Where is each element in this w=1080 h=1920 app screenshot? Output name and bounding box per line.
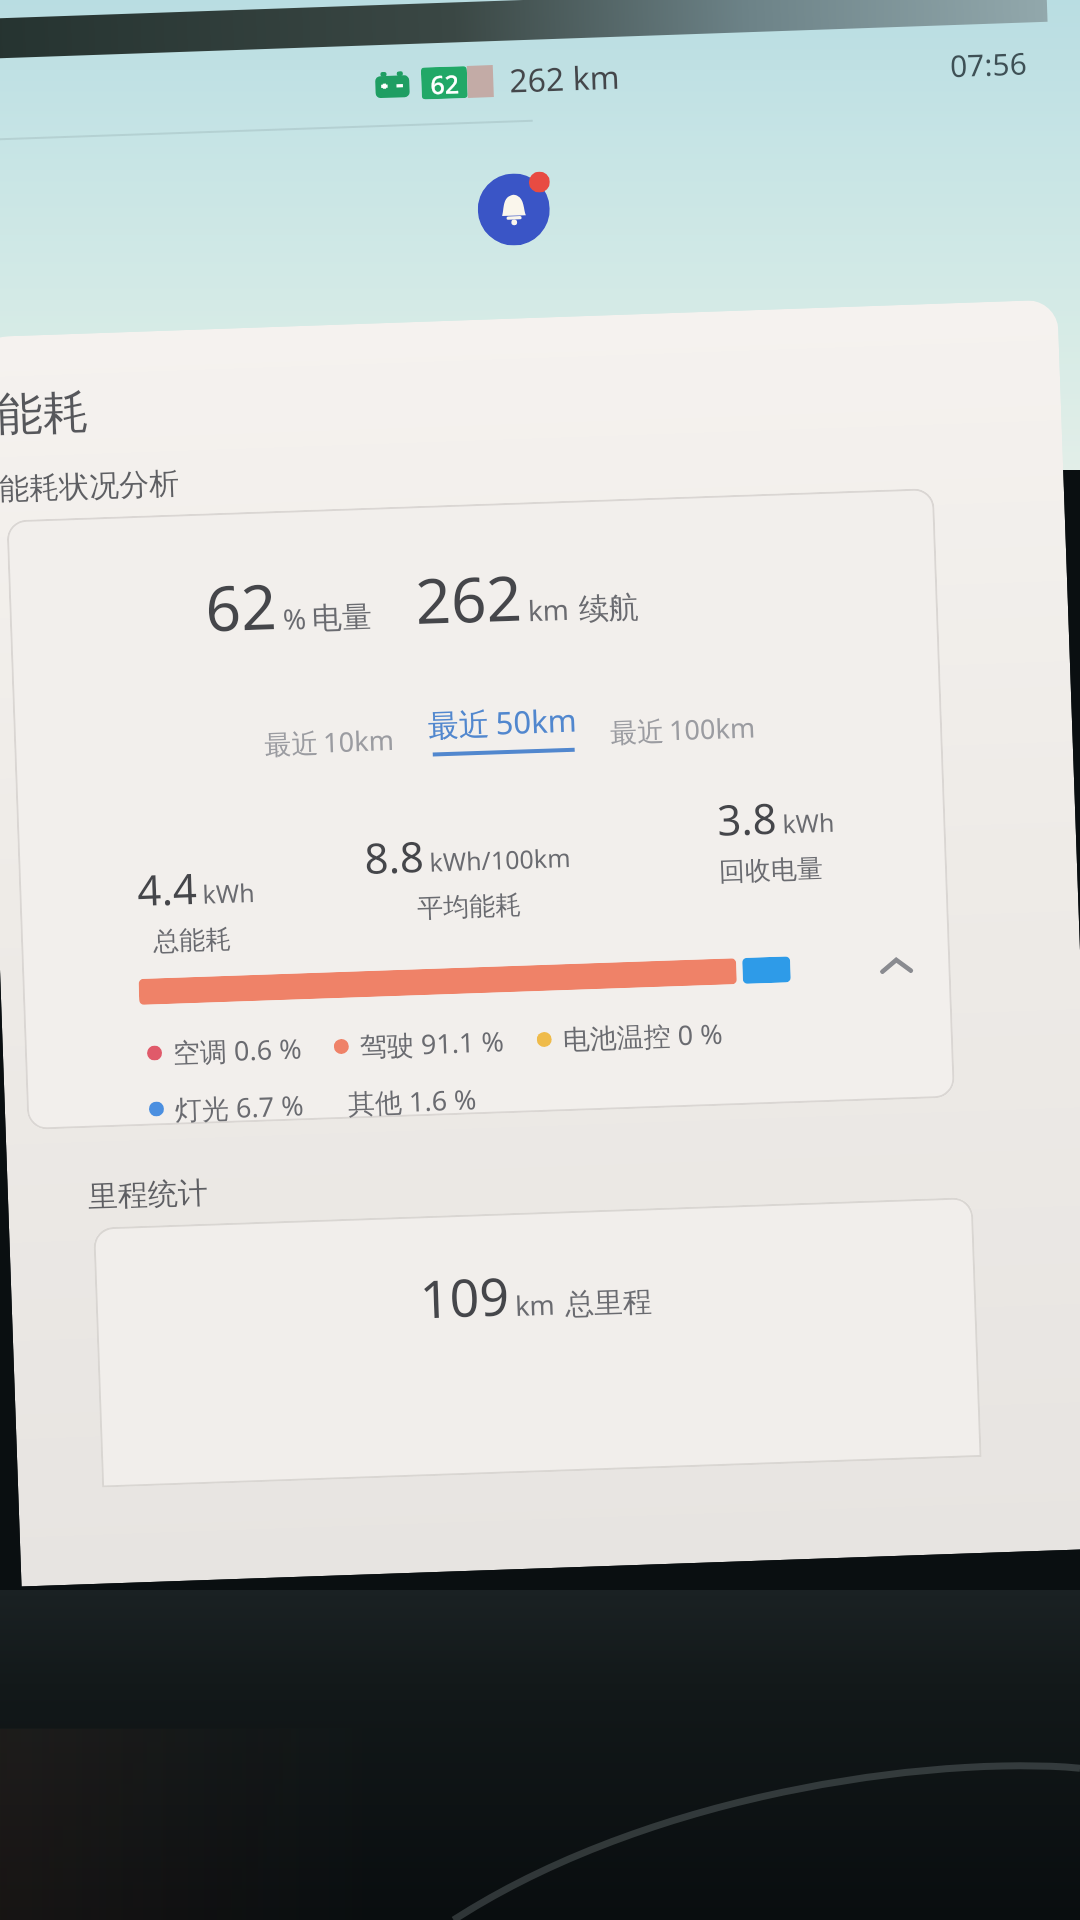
staticText: 最近 [609, 714, 665, 750]
staticText: 62 [204, 563, 278, 649]
staticText: % [282, 599, 308, 638]
staticText: 109 [418, 1259, 511, 1333]
staticText: 100km [668, 708, 756, 748]
staticText: 空调 0.6 % [172, 1029, 303, 1071]
staticText: kWh [202, 875, 256, 911]
button[interactable]: 最近 [259, 717, 399, 767]
button[interactable]: 62 [6, 488, 955, 1130]
staticText: 62 [430, 66, 460, 99]
staticText: 能耗 [0, 383, 90, 445]
button[interactable]: 最近 [605, 704, 760, 754]
staticText: 电量 [311, 598, 373, 638]
staticText: 总里程 [564, 1283, 653, 1323]
staticText: 续航 [578, 588, 639, 628]
staticText: 灯光 6.7 % [174, 1086, 304, 1125]
staticText: 262 km [508, 55, 621, 102]
button[interactable]: 最近 [423, 694, 583, 761]
button[interactable]: Collapse [872, 941, 921, 990]
staticText: 10km [323, 721, 395, 760]
staticText: 262 [414, 554, 524, 642]
staticText: 最近 [427, 705, 490, 746]
staticText: 平均能耗 [417, 889, 522, 925]
staticText: 电池温控 0 % [562, 1015, 723, 1057]
staticText: 总能耗 [153, 923, 232, 958]
staticText: 3.8 [716, 789, 778, 848]
staticText: 50km [495, 699, 578, 743]
staticText: kWh/100km [429, 840, 571, 879]
staticText: km [514, 1286, 556, 1324]
staticText: 4.4 [136, 859, 198, 918]
button[interactable]: Notifications [477, 172, 551, 247]
staticText: km [527, 590, 570, 629]
staticText: 里程统计 [87, 1174, 209, 1216]
staticText: 其他 1.6 % [347, 1080, 477, 1119]
staticText: 回收电量 [718, 852, 824, 889]
staticText: 驾驶 91.1 % [359, 1022, 505, 1064]
button[interactable]: 109 [93, 1197, 982, 1488]
staticText: kWh [782, 805, 836, 840]
staticText: 8.8 [363, 827, 425, 886]
staticText: 能耗状况分析 [0, 464, 180, 509]
staticText: 07:56 [949, 42, 1028, 86]
staticText: 最近 [264, 727, 319, 762]
